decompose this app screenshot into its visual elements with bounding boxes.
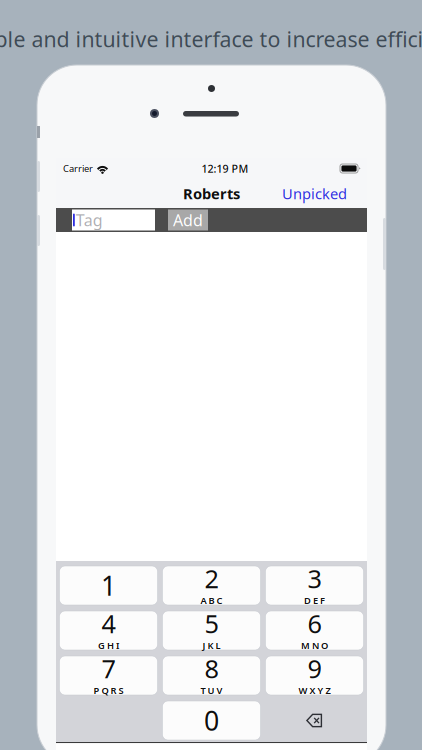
staticText: A B C — [200, 594, 222, 606]
staticText: 6 — [307, 606, 321, 640]
button[interactable]: Delete — [265, 701, 363, 740]
button[interactable]: 5 — [162, 611, 260, 650]
button[interactable]: 3 — [265, 566, 363, 605]
staticText: P Q R S — [93, 684, 123, 696]
staticText: Roberts — [183, 184, 240, 203]
staticText: G H I — [98, 639, 119, 651]
button[interactable]: 7 — [59, 656, 157, 695]
staticText: 3 — [307, 561, 321, 595]
staticText: Add — [173, 209, 203, 231]
staticText: 0 — [204, 703, 219, 738]
staticText: 5 — [204, 606, 218, 640]
staticText: 7 — [101, 651, 115, 685]
staticText: 9 — [307, 651, 321, 685]
button[interactable]: 4 — [59, 611, 157, 650]
button[interactable]: 2 — [162, 566, 260, 605]
staticText: Unpicked — [282, 184, 347, 203]
staticText: Carrier — [63, 162, 93, 175]
staticText: 4 — [101, 606, 115, 640]
staticText: 2 — [204, 561, 218, 595]
staticText: 12:19 PM — [201, 161, 248, 176]
button[interactable]: Unpicked — [274, 179, 355, 208]
staticText: J K L — [202, 639, 220, 651]
button[interactable]: 1 — [59, 566, 157, 605]
staticText: M N O — [301, 639, 328, 651]
staticText: 8 — [204, 651, 218, 685]
button[interactable]: 6 — [265, 611, 363, 650]
button[interactable]: 8 — [162, 656, 260, 695]
staticText: T U V — [200, 684, 222, 696]
staticText: Tag — [76, 209, 103, 231]
button[interactable]: 9 — [265, 656, 363, 695]
staticText: A simple and intuitive interface to incr… — [0, 25, 422, 53]
button[interactable]: 0 — [162, 701, 260, 740]
button[interactable]: Add — [168, 209, 208, 230]
staticText: W X Y Z — [298, 684, 330, 696]
staticText: 1 — [101, 568, 116, 603]
staticText: D E F — [304, 594, 325, 606]
